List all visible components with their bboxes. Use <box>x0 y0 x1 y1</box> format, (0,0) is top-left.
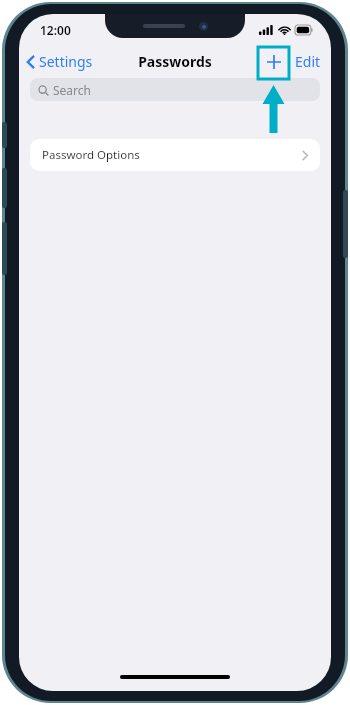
button[interactable]: Add password <box>261 49 287 75</box>
button[interactable]: Edit <box>293 48 323 75</box>
staticText: Password Options <box>42 147 140 163</box>
staticText: Edit <box>295 52 321 71</box>
staticText: 12:00 <box>40 22 71 38</box>
button[interactable]: Settings <box>19 48 101 75</box>
button[interactable]: Search <box>30 78 320 101</box>
staticText: Settings <box>39 52 93 71</box>
button[interactable]: Password Options <box>30 139 320 171</box>
staticText: Search <box>53 82 91 98</box>
staticText: Passwords <box>138 52 212 71</box>
